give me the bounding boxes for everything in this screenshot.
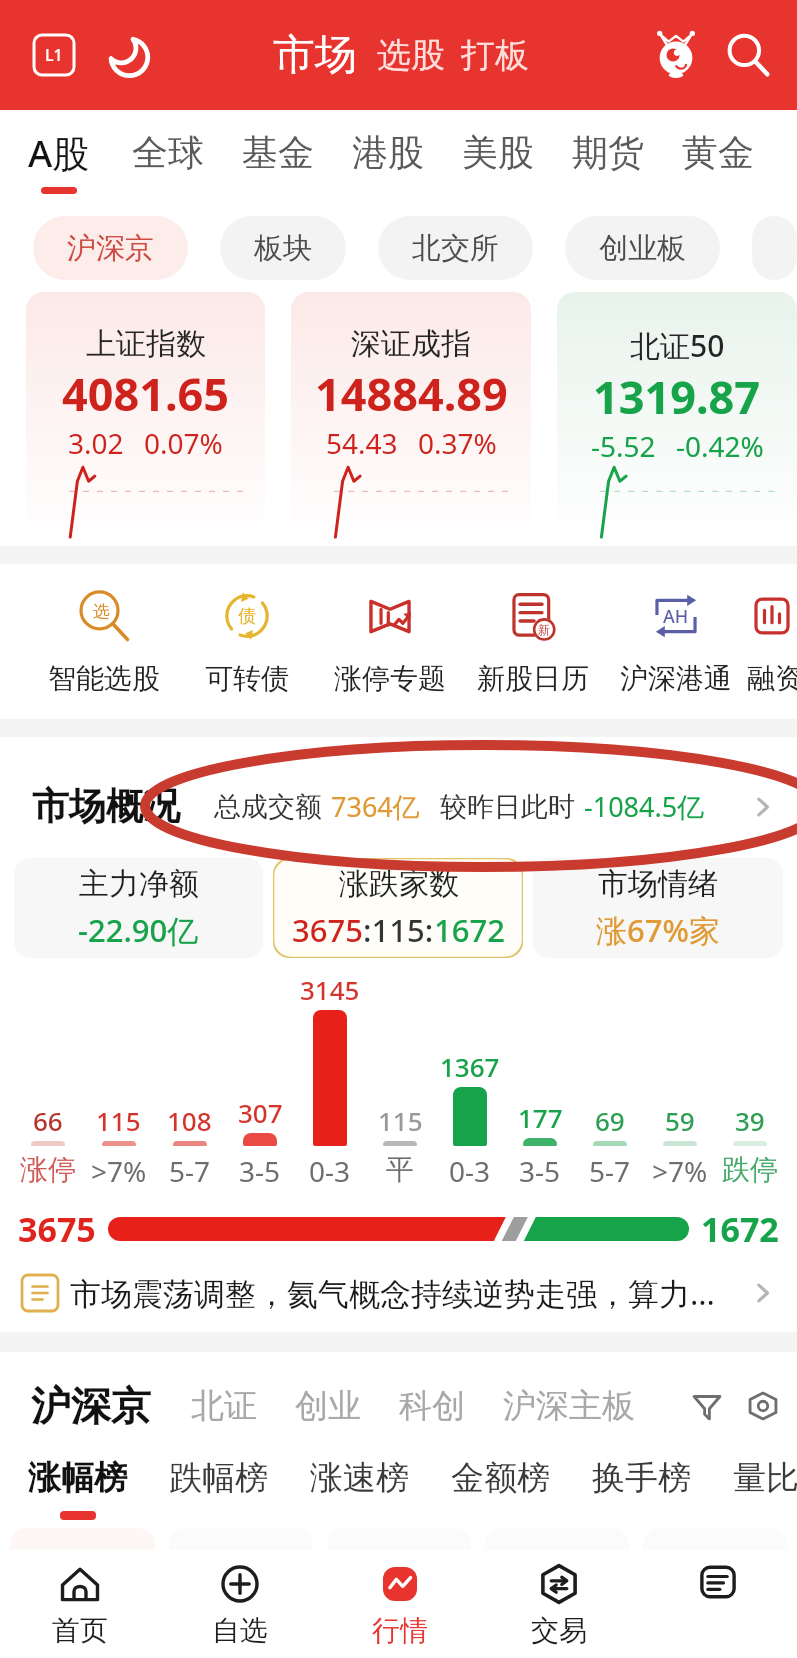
staticText: 市场震荡调整，氦气概念持续逆势走强，算力... <box>70 1272 715 1314</box>
staticText: 换手榜 <box>592 1457 691 1499</box>
staticText: 涨跌家数 <box>339 865 459 903</box>
button[interactable]: Night mode <box>102 29 154 81</box>
staticText: 涨停专题 <box>334 661 446 696</box>
button[interactable]: 板块 <box>220 216 346 280</box>
button[interactable]: 深证成指 <box>291 292 531 546</box>
staticText: 新 <box>538 622 550 637</box>
staticText: -5.52 <box>591 427 656 465</box>
button[interactable]: 上证指数 <box>26 292 265 546</box>
staticText: 主力净额 <box>79 865 199 903</box>
staticText: 自选 <box>212 1613 268 1648</box>
button[interactable]: 跌幅榜 <box>169 1457 268 1520</box>
button[interactable]: 港股 <box>333 110 443 204</box>
staticText: 1319.87 <box>593 366 761 427</box>
button[interactable]: 交易 <box>479 1561 638 1648</box>
staticText: 北交所 <box>412 230 499 267</box>
button[interactable]: 涨幅榜 <box>28 1457 127 1520</box>
staticText: 3145 <box>300 972 360 1007</box>
staticText: 平 <box>386 1152 414 1187</box>
button[interactable]: AH <box>604 587 747 696</box>
button[interactable]: 市场情绪 <box>533 858 783 958</box>
button[interactable]: 新 <box>461 587 604 696</box>
staticText: 深证成指 <box>351 325 471 363</box>
button[interactable]: 北交所 <box>378 216 533 280</box>
button[interactable]: 融资 <box>747 587 797 696</box>
staticText: 3.02 <box>68 424 124 462</box>
staticText: 307 <box>238 1095 283 1130</box>
staticText: 全球 <box>132 130 204 175</box>
button[interactable]: 科创 <box>399 1385 465 1427</box>
button[interactable]: 创业板 <box>565 216 720 280</box>
button[interactable]: 沪深京 <box>31 1381 151 1431</box>
staticText: 市场 <box>273 29 357 82</box>
staticText: 新股日历 <box>477 661 589 696</box>
button[interactable]: 涨速榜 <box>310 1457 409 1520</box>
button[interactable]: 北证50 <box>557 292 797 546</box>
button[interactable]: 沪深京 <box>33 216 188 280</box>
staticText: 14884.89 <box>315 363 508 424</box>
staticText: 市场概况 <box>32 783 180 830</box>
button[interactable]: 选 <box>32 587 175 696</box>
staticText: 4081.65 <box>62 363 230 424</box>
button[interactable]: 科创板 <box>752 216 797 280</box>
staticText: 涨速榜 <box>310 1457 409 1499</box>
staticText: L1 <box>45 44 63 66</box>
button[interactable]: 期货 <box>553 110 663 204</box>
staticText: 沪深京 <box>67 230 154 267</box>
staticText: 打板 <box>461 34 529 77</box>
button[interactable]: 换手榜 <box>592 1457 691 1520</box>
staticText: 1672 <box>434 909 505 951</box>
staticText: >7% <box>91 1152 147 1190</box>
button[interactable]: 黄金 <box>663 110 773 204</box>
staticText: 选 <box>93 601 110 622</box>
button[interactable]: 自选 <box>160 1561 320 1648</box>
button[interactable]: 量比榜 <box>733 1457 797 1520</box>
staticText: 涨停 <box>20 1152 76 1187</box>
staticText: AH <box>663 604 689 629</box>
staticText: >7% <box>652 1152 708 1190</box>
staticText: -1084.5亿 <box>584 788 705 825</box>
staticText: 板块 <box>254 230 312 267</box>
staticText: 量比榜 <box>733 1457 797 1499</box>
button[interactable]: 债 <box>175 587 318 696</box>
button[interactable]: Level 1 quotes <box>32 33 76 77</box>
staticText: 0-3 <box>309 1152 351 1190</box>
button[interactable]: Filter <box>687 1386 727 1426</box>
staticText: 沪深港通 <box>620 661 732 696</box>
button[interactable]: 金额榜 <box>451 1457 550 1520</box>
staticText: 可转债 <box>205 661 289 696</box>
staticText: 融资 <box>747 661 797 696</box>
button[interactable]: 市场震荡调整，氦气概念持续逆势走强，算力... <box>22 1272 777 1314</box>
button[interactable]: 涨跌家数 <box>273 858 523 958</box>
button[interactable]: 首页 <box>0 1561 160 1648</box>
staticText: 108 <box>167 1103 212 1138</box>
button[interactable]: 主力净额 <box>14 858 263 958</box>
staticText: 跌幅榜 <box>169 1457 268 1499</box>
staticText: 市场情绪 <box>598 865 718 903</box>
button[interactable]: Settings <box>743 1386 783 1426</box>
staticText: 智能选股 <box>48 661 160 696</box>
staticText: 115 <box>96 1103 141 1138</box>
button[interactable]: More <box>638 1559 797 1649</box>
staticText: 54.43 <box>326 424 398 462</box>
button[interactable]: 美股 <box>443 110 553 204</box>
button[interactable]: 沪深主板 <box>503 1385 635 1427</box>
staticText: 上证指数 <box>86 325 206 363</box>
button[interactable]: 全球 <box>113 110 223 204</box>
button[interactable]: Assistant <box>649 28 703 82</box>
button[interactable]: A股 <box>4 110 113 204</box>
staticText: 1672 <box>701 1206 779 1252</box>
staticText: 59 <box>665 1103 695 1138</box>
button[interactable]: 基金 <box>223 110 333 204</box>
staticText: 39 <box>735 1103 765 1138</box>
button[interactable]: 行情 <box>320 1561 479 1648</box>
button[interactable]: 创业 <box>295 1385 361 1427</box>
staticText: -0.42% <box>676 427 764 465</box>
button[interactable]: 涨停专题 <box>318 587 461 696</box>
staticText: 首页 <box>52 1613 108 1648</box>
staticText: 66 <box>33 1103 63 1138</box>
staticText: 1367 <box>440 1049 500 1084</box>
button[interactable]: 市场概况 <box>32 783 777 830</box>
button[interactable]: 北证 <box>191 1385 257 1427</box>
button[interactable]: Search <box>721 28 775 82</box>
